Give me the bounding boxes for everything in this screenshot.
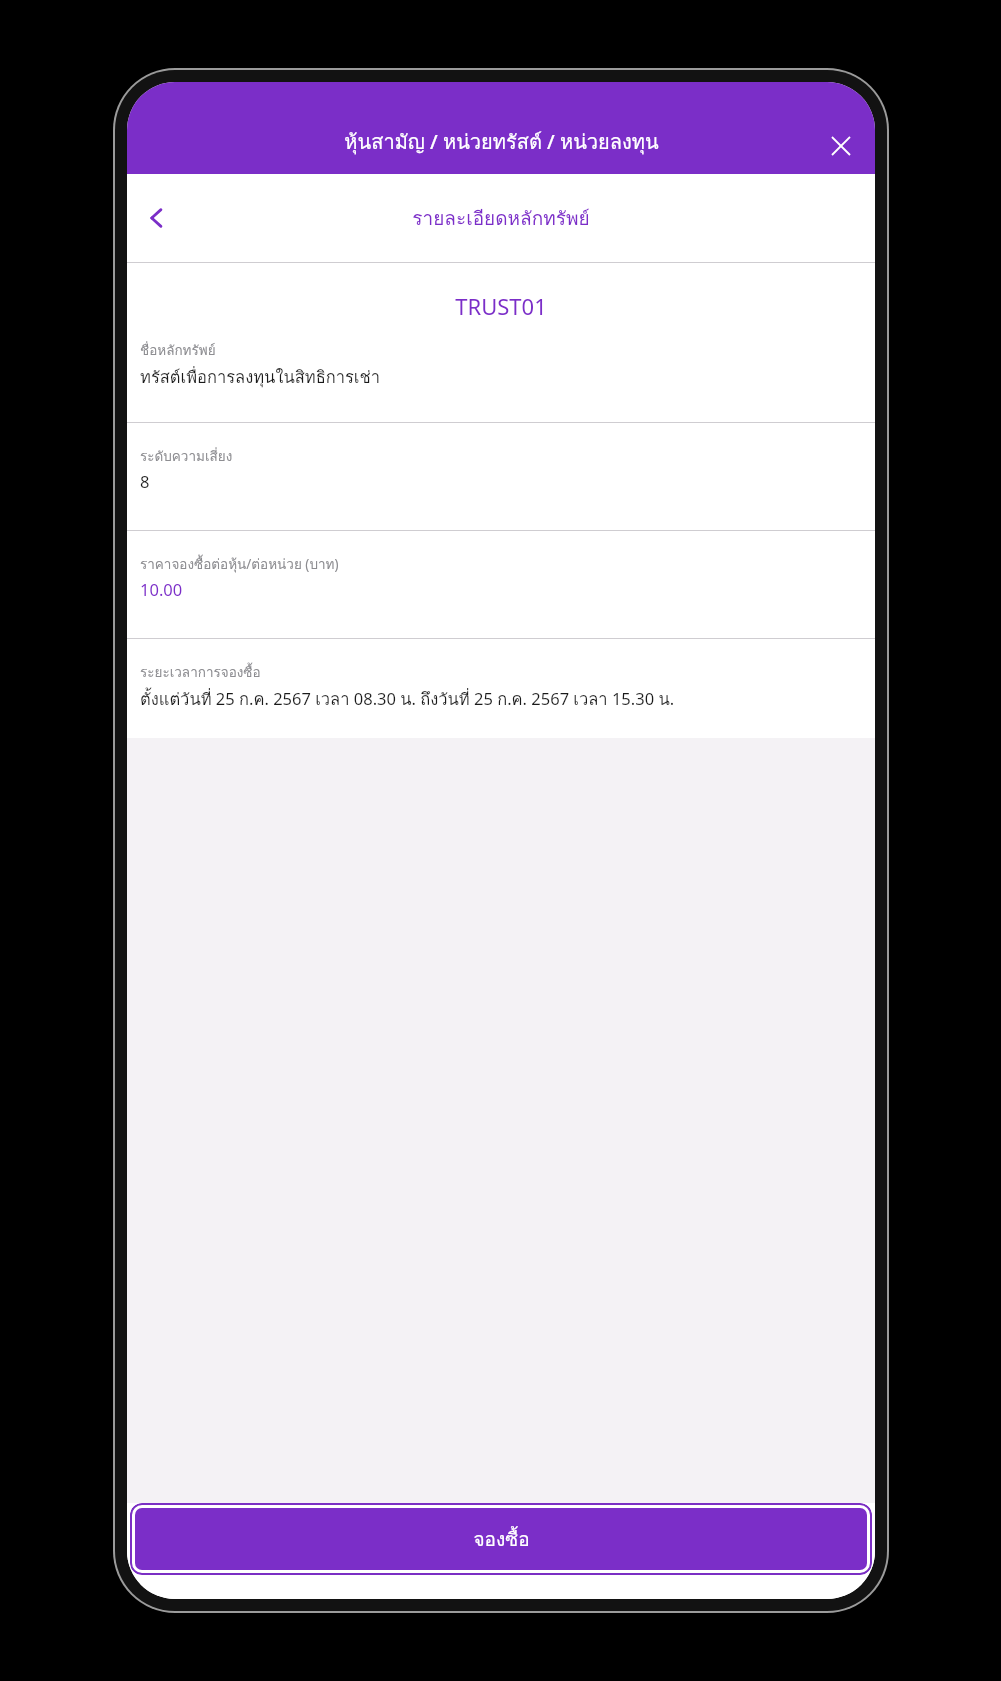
staticText: รายละเอียดหลักทรัพย์ [412,203,590,233]
button[interactable]: Close [821,126,861,166]
staticText: ทรัสต์เพื่อการลงทุนในสิทธิการเช่า [140,364,380,390]
staticText: 10.00 [140,578,183,600]
button[interactable]: ระยะเวลาการจองซื้อ [127,639,875,738]
button[interactable]: Back [133,194,181,242]
staticText: จองซื้อ [473,1524,530,1554]
button[interactable]: จองซื้อ [135,1508,867,1570]
staticText: ชื่อหลักทรัพย์ [140,339,216,360]
staticText: ระยะเวลาการจองซื้อ [140,661,261,682]
staticText: 8 [140,470,150,492]
staticText: ระดับความเสี่ยง [140,445,233,466]
staticText: หุ้นสามัญ / หน่วยทรัสต์ / หน่วยลงทุน [344,126,659,158]
button[interactable]: ราคาจองซื้อต่อหุ้น/ต่อหน่วย (บาท) [127,531,875,638]
button[interactable]: ระดับความเสี่ยง [127,423,875,530]
staticText: ตั้งแต่วันที่ 25 ก.ค. 2567 เวลา 08.30 น.… [140,686,675,712]
button[interactable]: ชื่อหลักทรัพย์ [127,339,875,390]
staticText: TRUST01 [127,291,875,321]
staticText: ราคาจองซื้อต่อหุ้น/ต่อหน่วย (บาท) [140,553,339,574]
